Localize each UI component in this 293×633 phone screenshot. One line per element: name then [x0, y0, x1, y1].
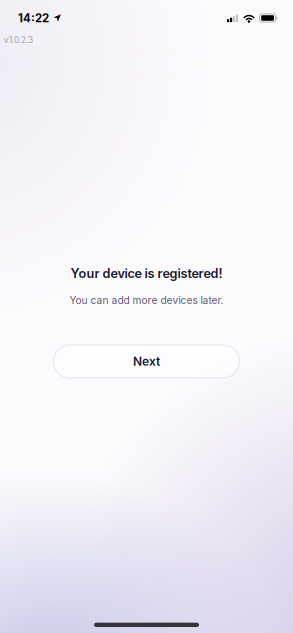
staticText: Your device is registered!: [70, 266, 222, 281]
staticText: 14:22: [18, 11, 49, 25]
staticText: v1.0.2.3: [4, 35, 33, 45]
staticText: Next: [133, 354, 160, 369]
button[interactable]: Next: [53, 345, 239, 378]
staticText: You can add more devices later.: [69, 294, 223, 306]
